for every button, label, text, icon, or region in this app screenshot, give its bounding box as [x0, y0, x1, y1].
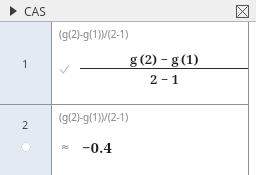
- staticText: (g(2)-g(1))/(2-1): [59, 110, 129, 124]
- staticText: 2: [22, 117, 29, 132]
- button[interactable]: 1: [0, 22, 51, 104]
- staticText: (g(2)-g(1))/(2-1): [59, 27, 129, 41]
- staticText: g (2) − g (1): [130, 50, 199, 68]
- button[interactable]: 2: [0, 105, 51, 175]
- button[interactable]: Collapse CAS panel: [6, 4, 20, 18]
- button[interactable]: Close: [233, 2, 251, 20]
- button[interactable]: (g(2)-g(1))/(2-1): [52, 105, 249, 175]
- other: Row marker: [21, 142, 31, 152]
- staticText: CAS: [24, 3, 46, 19]
- staticText: ≈: [61, 141, 70, 153]
- staticText: −0.4: [82, 137, 112, 157]
- staticText: 2 − 1: [150, 70, 179, 88]
- button[interactable]: (g(2)-g(1))/(2-1): [52, 22, 249, 104]
- staticText: 1: [22, 56, 29, 71]
